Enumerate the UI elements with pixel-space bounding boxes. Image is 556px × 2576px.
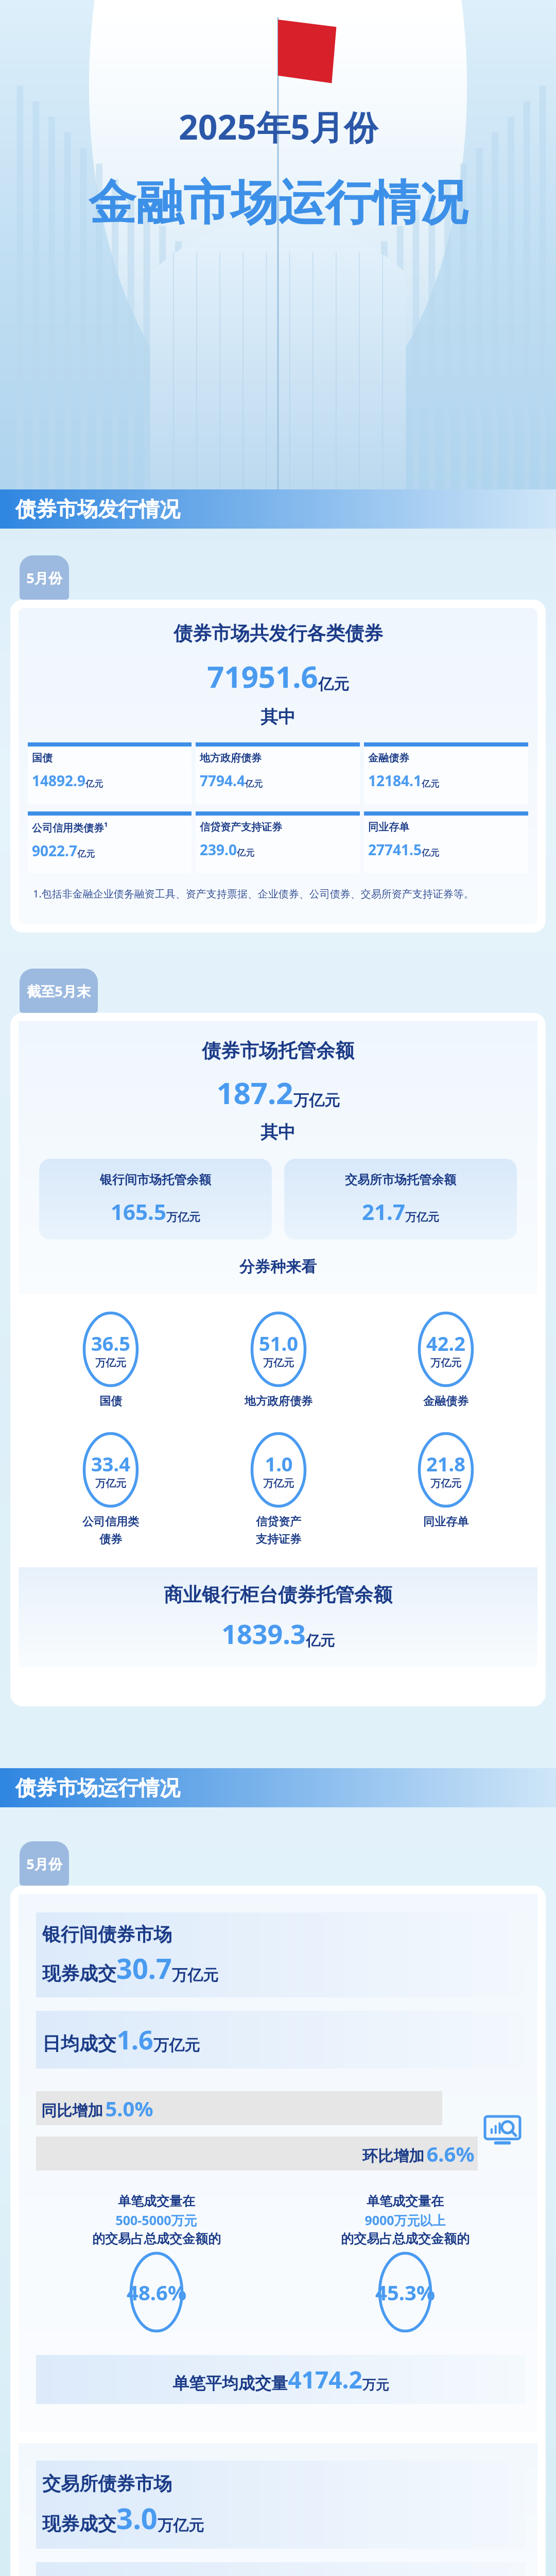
staticText: 33.4 [91,1450,130,1477]
button[interactable]: 银行间市场托管余额 [39,1159,272,1240]
staticText: 地方政府债券 [245,1394,312,1409]
staticText: 亿元 [85,778,103,789]
staticText: 万亿元 [95,1357,126,1369]
staticText: 万亿元 [263,1357,294,1369]
staticText: 165.5 [111,1197,166,1226]
button[interactable]: 21.8 [362,1432,529,1529]
staticText: 1.包括非金融企业债务融资工具、资产支持票据、企业债券、公司债券、交易所资产支持… [33,887,523,901]
staticText: 公司信用类债券¹ [32,821,108,835]
staticText: 48.6% [127,2278,186,2306]
button[interactable]: 交易所市场托管余额 [284,1159,517,1240]
staticText: 21.8 [426,1450,465,1477]
staticText: 亿元 [237,848,254,858]
staticText: 5月份 [26,568,62,587]
staticText: 金融债券 [368,752,409,765]
staticText: 商业银行柜台债券托管余额 [164,1583,392,1607]
staticText: 36.5 [91,1330,130,1357]
staticText: 万亿元 [405,1210,439,1225]
staticText: 交易所市场托管余额 [345,1172,456,1188]
button[interactable]: 36.5 [27,1312,195,1409]
button[interactable]: 单笔成交量在 [285,2193,525,2332]
staticText: 万亿元 [430,1357,461,1369]
staticText: 债券市场发行情况 [15,496,180,522]
staticText: 2025年5月份 [179,103,378,149]
staticText: 截至5月末 [27,981,91,1001]
staticText: 187.2 [216,1072,293,1113]
staticText: 债券市场共发行各类债券 [173,621,383,646]
button[interactable]: 债券市场发行情况 [0,489,556,529]
staticText: 国债 [32,752,53,765]
staticText: 同业存单 [423,1515,468,1529]
button[interactable]: 公司信用类债券¹ [28,811,192,873]
button[interactable]: 5月份 [20,1841,69,1886]
staticText: 7794.4 [200,771,245,790]
staticText: 万亿元 [153,2036,200,2055]
staticText: 的交易占总成交金额的 [341,2231,470,2247]
staticText: 1.6 [116,2022,153,2057]
staticText: 万亿元 [158,2516,204,2535]
staticText: 9000万元以上 [364,2211,446,2229]
staticText: 239.0 [200,840,237,859]
staticText: 单笔成交量在 [367,2193,444,2209]
staticText: 3.0 [116,2498,158,2537]
button[interactable]: 截至5月末 [20,969,98,1013]
staticText: 27741.5 [368,840,422,859]
button[interactable]: 国债 [28,742,192,804]
staticText: 银行间市场托管余额 [100,1172,211,1188]
staticText: 亿元 [422,778,439,789]
staticText: 现券成交 [42,2512,116,2535]
button[interactable]: 同业存单 [364,811,528,873]
staticText: 债券市场运行情况 [15,1775,180,1801]
staticText: 现券成交 [42,1962,116,1985]
button[interactable]: 地方政府债券 [196,742,360,804]
button[interactable]: 金融债券 [364,742,528,804]
staticText: 债券市场托管余额 [202,1039,354,1063]
staticText: 6.6% [426,2140,475,2167]
staticText: 金融债券 [423,1394,468,1409]
staticText: 亿元 [318,674,349,694]
staticText: 同比增加 [39,2099,105,2121]
staticText: 5.0% [105,2094,153,2122]
staticText: 71951.6 [207,656,318,697]
staticText: 国债 [99,1394,122,1409]
button[interactable]: 5月份 [20,555,69,600]
staticText: 地方政府债券 [200,752,262,765]
button[interactable]: 债券市场共发行各类债券 [10,600,546,933]
staticText: 亿元 [77,849,95,859]
button[interactable]: 51.0 [195,1312,362,1409]
button[interactable]: 42.2 [362,1312,529,1409]
staticText: 亿元 [422,848,439,858]
staticText: 5月份 [26,1854,62,1873]
staticText: 万亿元 [263,1477,294,1490]
button[interactable]: 债券市场运行情况 [0,1768,556,1807]
staticText: 其中 [260,706,296,728]
staticText: 42.2 [426,1330,465,1357]
staticText: 1.0 [265,1450,293,1477]
staticText: 45.3% [375,2278,435,2306]
button[interactable]: 1.0 [195,1432,362,1547]
button[interactable]: 信贷资产支持证券 [196,811,360,873]
staticText: 万亿元 [95,1477,126,1490]
staticText: 30.7 [116,1949,172,1987]
staticText: 金融市场运行情况 [89,173,467,233]
staticText: 交易所债券市场 [42,2472,172,2495]
staticText: 万元 [362,2377,389,2394]
staticText: 4174.2 [288,2363,362,2396]
staticText: 债券 [99,1532,122,1547]
staticText: 12184.1 [368,771,422,790]
staticText: 1839.3 [221,1615,306,1652]
staticText: 信贷资产 [256,1515,301,1529]
staticText: 亿元 [306,1632,335,1650]
staticText: 万亿元 [293,1091,340,1110]
button[interactable]: 33.4 [27,1432,195,1547]
button[interactable]: 单笔成交量在 [36,2193,276,2332]
button[interactable]: 债券市场托管余额 [10,1013,546,1706]
staticText: 公司信用类 [82,1515,139,1529]
button[interactable]: 银行间债券市场 [10,1886,546,2576]
staticText: 支持证券 [256,1532,301,1547]
staticText: 信贷资产支持证券 [200,821,282,834]
staticText: 日均成交 [42,2032,116,2055]
staticText: 其中 [260,1121,296,1143]
staticText: 亿元 [245,778,263,789]
